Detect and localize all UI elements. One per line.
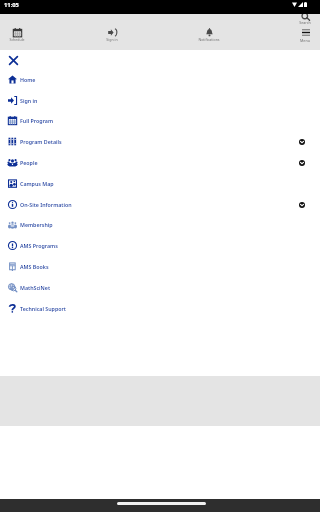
staticText: 11:05 xyxy=(4,1,19,9)
button[interactable]: Full Program xyxy=(0,110,320,131)
button[interactable]: Campus Map xyxy=(0,173,320,194)
button[interactable]: Home xyxy=(0,69,320,90)
staticText: Membership xyxy=(20,221,53,228)
staticText: Program Details xyxy=(20,138,62,145)
button[interactable]: Expand People xyxy=(299,160,305,166)
staticText: On-Site Information xyxy=(20,201,72,208)
button[interactable]: Sign in xyxy=(0,90,320,111)
button[interactable]: Search xyxy=(289,12,320,25)
staticText: Technical Support xyxy=(20,305,66,312)
button[interactable]: MathSciNet xyxy=(0,277,320,298)
button[interactable]: Program Details xyxy=(0,131,320,152)
staticText: Search xyxy=(299,20,311,25)
staticText: MathSciNet xyxy=(20,284,51,291)
button[interactable]: Close xyxy=(4,51,22,69)
button[interactable]: Schedule xyxy=(1,25,33,43)
staticText: Campus Map xyxy=(20,180,54,187)
staticText: Home xyxy=(20,76,36,83)
staticText: Sign in xyxy=(20,97,38,104)
button[interactable]: AMS Programs xyxy=(0,235,320,256)
staticText: Full Program xyxy=(20,117,54,124)
staticText: People xyxy=(20,159,38,166)
button[interactable]: Menu xyxy=(289,28,320,42)
staticText: Menu xyxy=(300,38,310,43)
button[interactable]: Expand On-Site Information xyxy=(299,202,305,208)
button[interactable]: People xyxy=(0,152,320,173)
staticText: Notifications xyxy=(198,37,220,42)
button[interactable]: Sign in xyxy=(96,25,128,43)
button[interactable]: Technical Support xyxy=(0,298,320,319)
button[interactable]: Expand Program Details xyxy=(299,139,305,145)
button[interactable]: On-Site Information xyxy=(0,194,320,215)
staticText: AMS Programs xyxy=(20,242,58,249)
button[interactable]: AMS Books xyxy=(0,256,320,277)
staticText: AMS Books xyxy=(20,263,49,270)
staticText: Sign in xyxy=(106,37,118,42)
button[interactable]: Notifications xyxy=(193,25,225,43)
button[interactable]: Membership xyxy=(0,214,320,235)
staticText: Schedule xyxy=(9,37,25,42)
